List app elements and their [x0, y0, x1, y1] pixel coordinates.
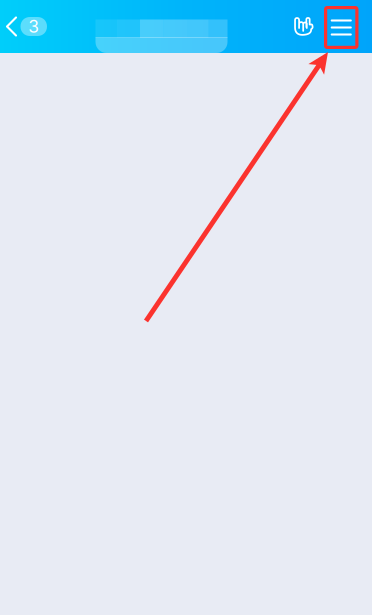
staticText: 3	[28, 16, 39, 37]
button[interactable]: Back, 3 unread	[0, 0, 47, 36]
button[interactable]: Shake	[0, 0, 320, 43]
button[interactable]: Menu	[0, 0, 358, 49]
